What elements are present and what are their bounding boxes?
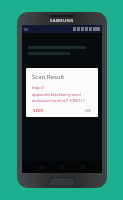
button[interactable]: Home — [49, 177, 75, 185]
button[interactable]: VISIT — [32, 107, 45, 114]
staticText: Scan Result — [32, 73, 65, 81]
staticText: OK — [85, 108, 91, 113]
staticText: VISIT — [33, 108, 44, 113]
staticText: SAMSUNG — [50, 18, 74, 23]
staticText: http://appworld.blackberry.com/ webstore… — [32, 85, 92, 103]
button[interactable]: OK — [84, 107, 92, 114]
